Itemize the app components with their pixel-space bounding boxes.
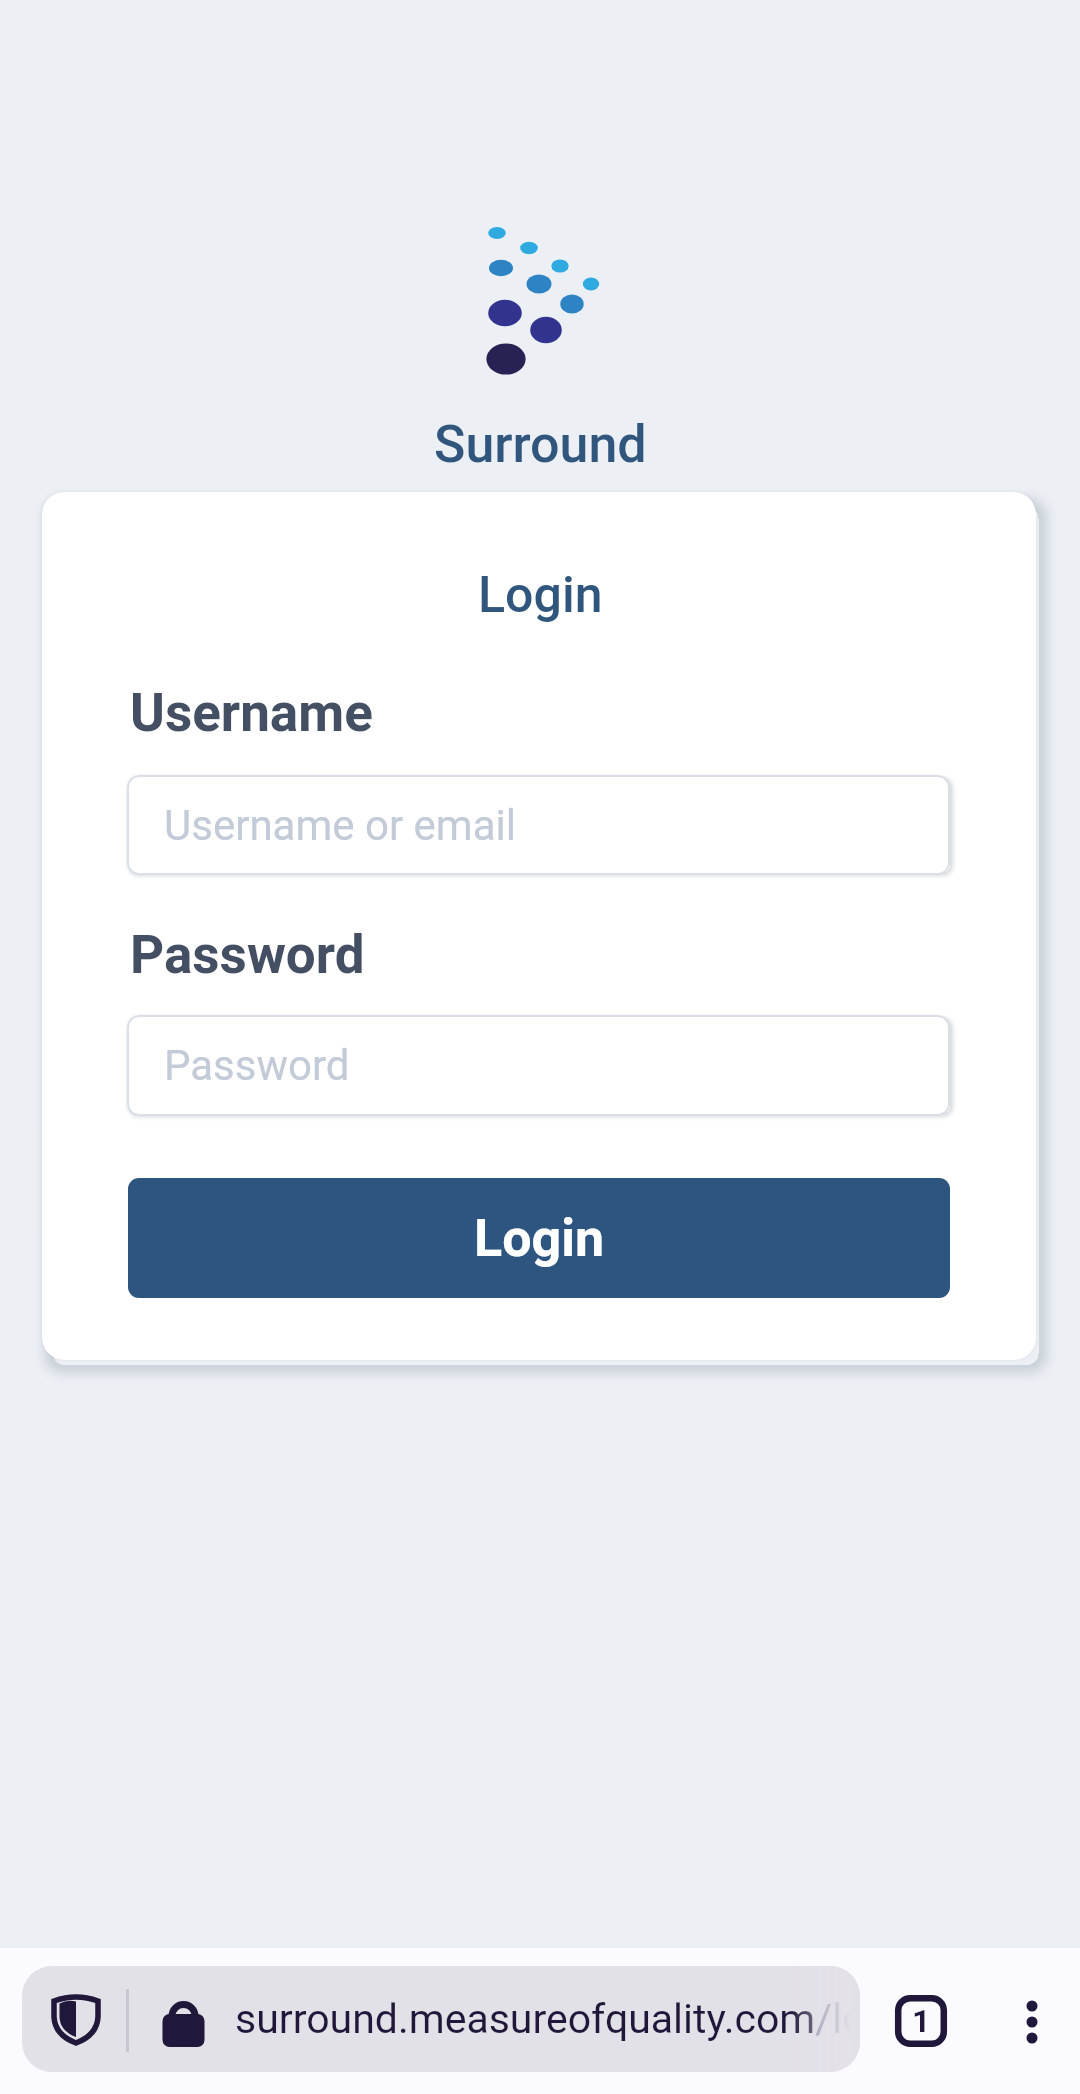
button[interactable] [1005, 1990, 1059, 2052]
button[interactable]: 1 [895, 1995, 947, 2047]
staticText: Username [130, 682, 373, 744]
staticText: Username or email [164, 801, 516, 850]
staticText: Login [474, 1208, 605, 1269]
button[interactable]: surround.measureofquality.com/lo [22, 1966, 860, 2072]
staticText: Surround [434, 414, 647, 475]
button[interactable]: Username or email [127, 775, 950, 875]
staticText: Password [164, 1041, 350, 1090]
button[interactable]: Login [128, 1178, 950, 1298]
staticText: 1 [912, 2002, 931, 2040]
staticText: Password [130, 924, 365, 986]
button[interactable]: Password [127, 1015, 950, 1116]
staticText: Login [478, 566, 603, 625]
staticText: surround.measureofquality.com/lo [235, 1995, 860, 2043]
